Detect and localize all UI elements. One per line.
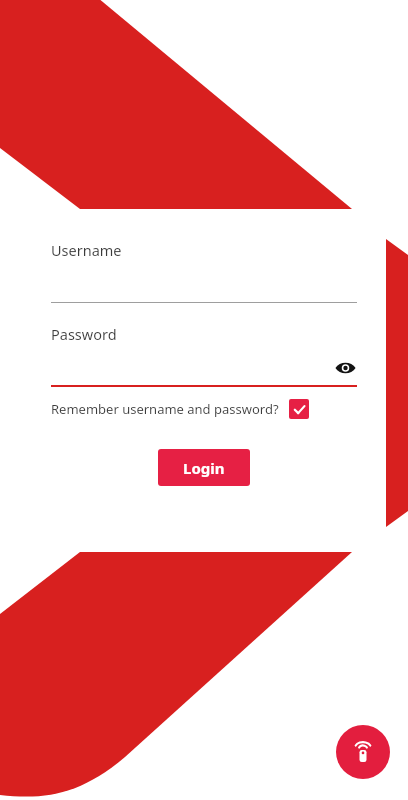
staticText: Password [51, 324, 117, 344]
staticText: Username [51, 240, 122, 260]
staticText: Login [183, 458, 225, 478]
button[interactable]: Login [158, 449, 250, 486]
button[interactable]: Show password [333, 356, 357, 380]
button[interactable]: Remote control [336, 725, 390, 779]
button[interactable]: Remember username and password? [51, 399, 357, 419]
staticText: Remember username and password? [51, 400, 279, 418]
other: Remember me [289, 399, 309, 419]
